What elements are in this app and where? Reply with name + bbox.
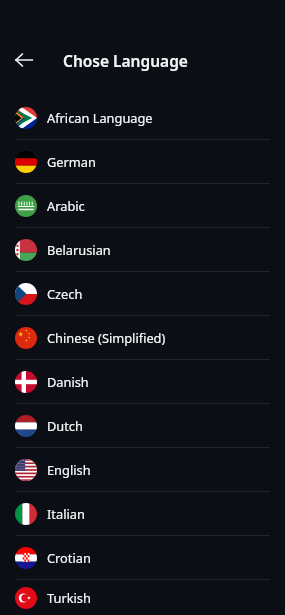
staticText: Arabic <box>47 197 85 214</box>
button[interactable]: Dutch <box>0 404 285 447</box>
staticText: Italian <box>47 505 85 522</box>
staticText: Belarusian <box>47 241 111 258</box>
button[interactable]: Italian <box>0 492 285 535</box>
button[interactable]: Back <box>8 44 40 76</box>
staticText: African Language <box>47 109 153 126</box>
button[interactable]: English <box>0 448 285 491</box>
staticText: German <box>47 153 96 170</box>
button[interactable]: Belarusian <box>0 228 285 271</box>
button[interactable]: Crotian <box>0 536 285 579</box>
staticText: Chose Language <box>63 50 188 71</box>
button[interactable]: Arabic <box>0 184 285 227</box>
staticText: Danish <box>47 373 89 390</box>
button[interactable]: Chinese (Simplified) <box>0 316 285 359</box>
button[interactable]: German <box>0 140 285 183</box>
button[interactable]: Danish <box>0 360 285 403</box>
staticText: English <box>47 461 91 478</box>
staticText: Dutch <box>47 417 83 434</box>
button[interactable]: African Language <box>0 96 285 139</box>
staticText: Chinese (Simplified) <box>47 329 166 346</box>
button[interactable]: Turkish <box>0 580 285 615</box>
staticText: Crotian <box>47 549 91 566</box>
button[interactable]: Czech <box>0 272 285 315</box>
staticText: Czech <box>47 285 83 302</box>
staticText: Turkish <box>47 589 91 606</box>
